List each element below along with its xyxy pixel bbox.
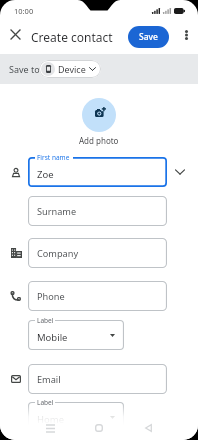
staticText: Phone [37,290,65,303]
button[interactable]: Surname [28,196,167,226]
staticText: Create contact [31,29,113,45]
staticText: Save to [9,63,40,75]
button[interactable]: Recents [40,418,60,438]
button[interactable]: Save [128,26,169,48]
button[interactable]: Expand name fields [172,164,188,180]
staticText: Device [58,63,86,75]
button[interactable]: Device [39,60,101,78]
button[interactable]: Home [89,418,109,438]
button[interactable]: Add photo [82,98,116,132]
button[interactable]: More options [178,26,195,43]
button[interactable]: Company [28,238,167,268]
button[interactable]: First name [28,157,167,187]
button[interactable]: Phone [28,281,167,311]
button[interactable]: Close [7,26,24,43]
staticText: Home [37,413,65,426]
button[interactable]: Label [28,320,124,350]
staticText: Label [37,316,54,325]
button[interactable]: Label [28,402,124,432]
staticText: Mobile [37,331,68,344]
staticText: 10:00 [14,6,34,16]
button[interactable]: Email [28,364,167,394]
staticText: Label [37,398,54,407]
staticText: Company [37,247,79,260]
button[interactable]: Back [138,418,158,438]
staticText: Save [139,31,158,43]
staticText: Email [37,373,61,386]
staticText: Add photo [79,135,119,146]
staticText: Zoe [37,168,54,181]
staticText: First name [37,153,70,162]
staticText: Surname [37,205,77,218]
